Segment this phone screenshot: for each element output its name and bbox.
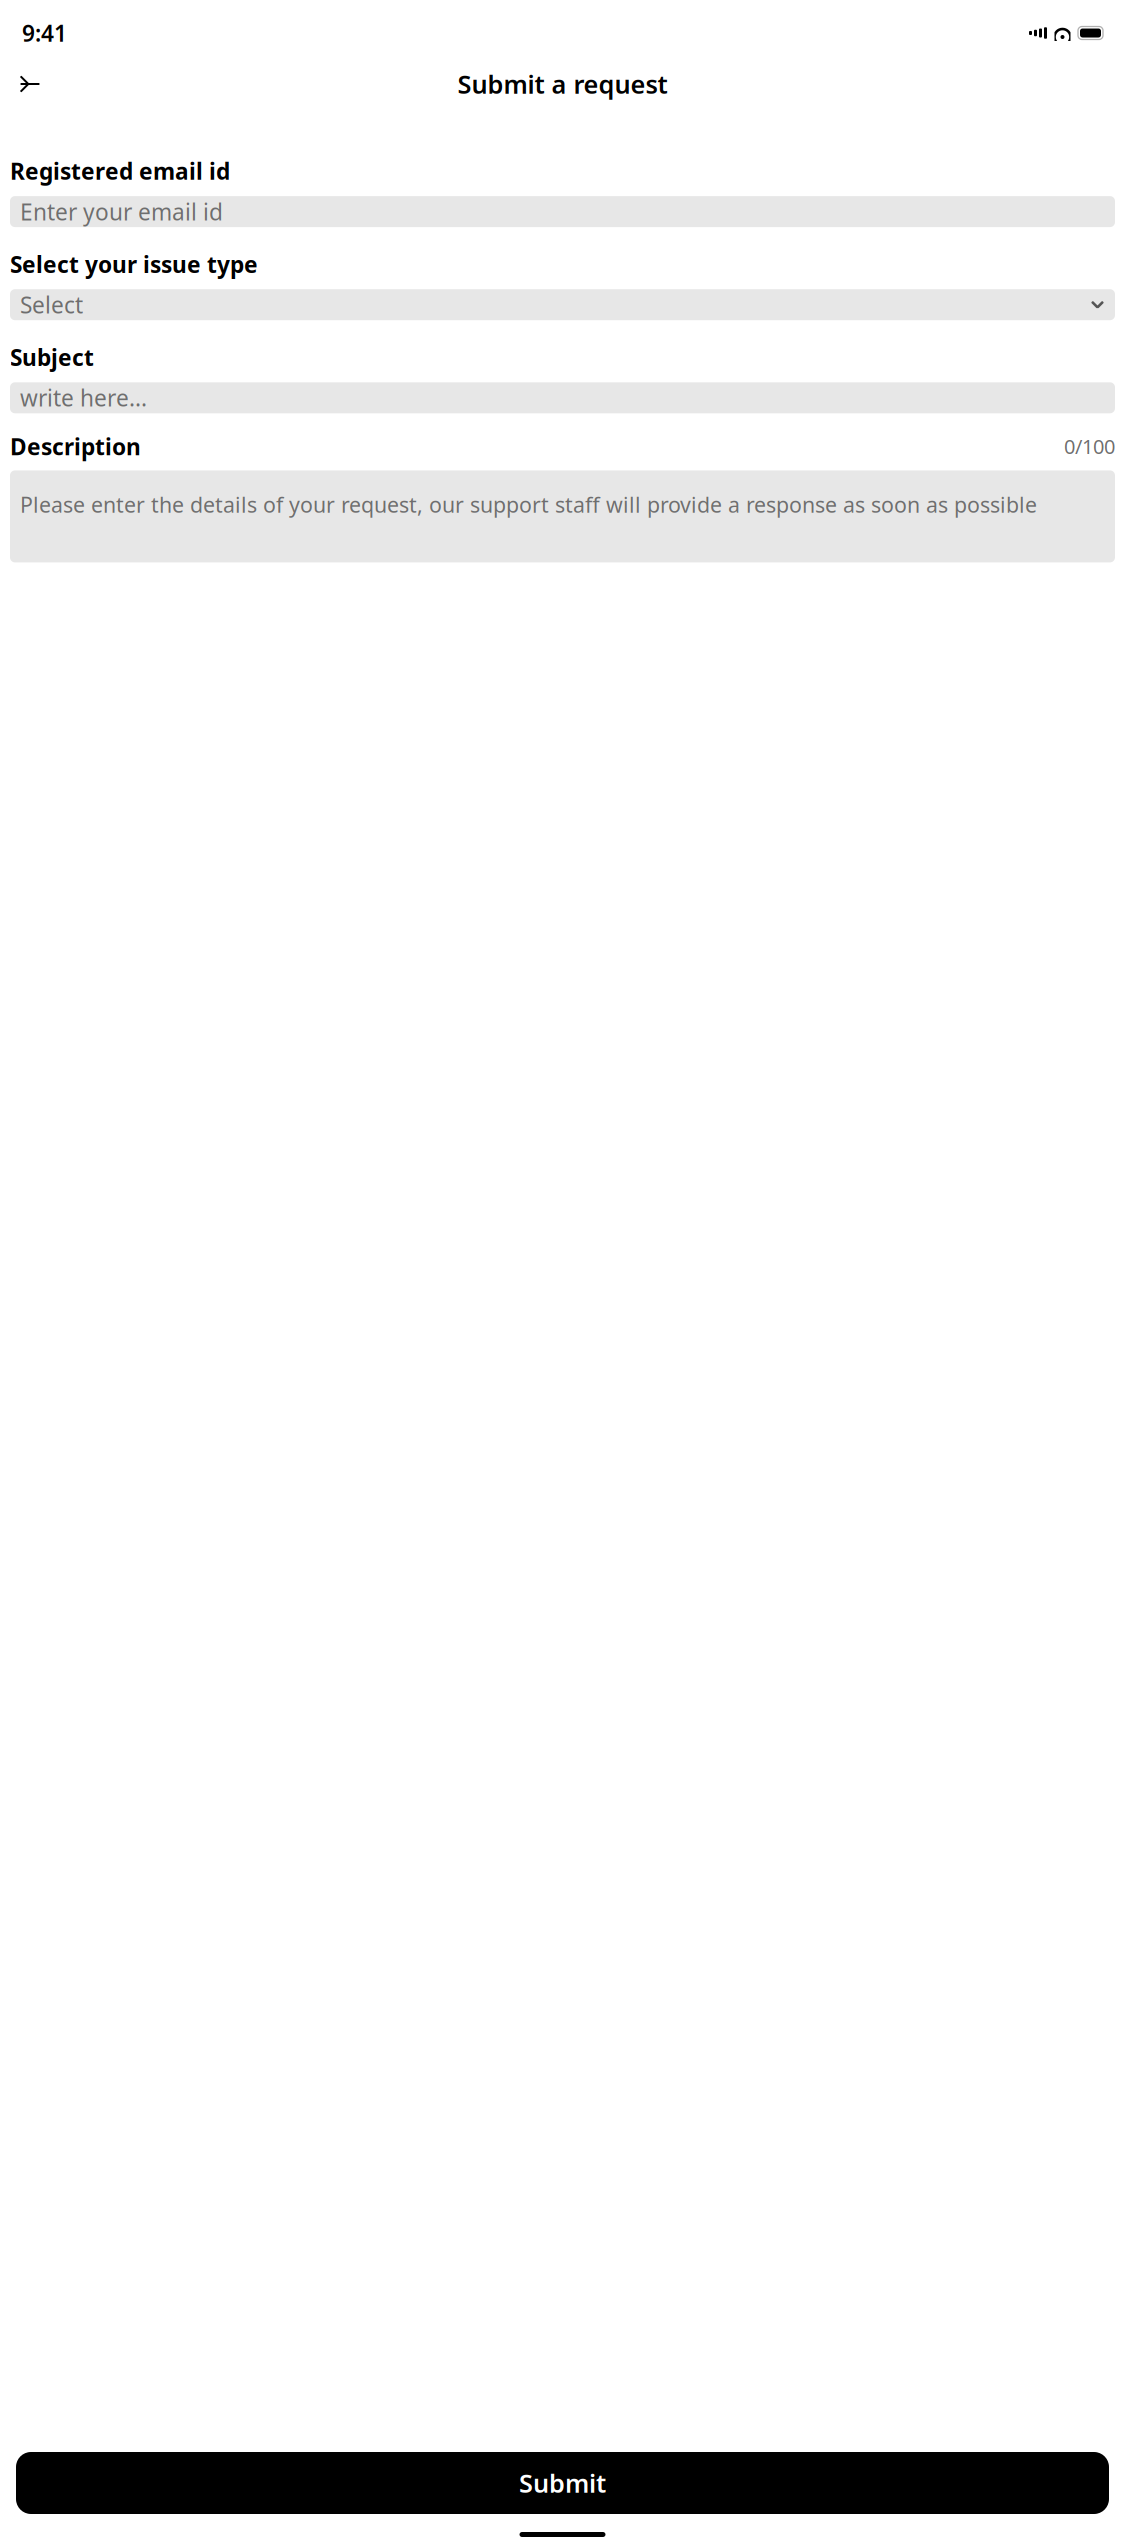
staticText: Select your issue type — [10, 249, 258, 279]
staticText: Subject — [10, 342, 94, 372]
staticText: 9:41 — [22, 18, 67, 48]
button[interactable]: Submit — [16, 2452, 1109, 2514]
button[interactable]: Back — [8, 62, 52, 106]
staticText: Registered email id — [10, 156, 230, 186]
button[interactable]: Enter your email id — [10, 196, 1115, 227]
staticText: write here... — [20, 383, 147, 413]
button[interactable]: Select — [10, 289, 1115, 320]
staticText: Enter your email id — [20, 197, 223, 227]
button[interactable]: write here... — [10, 382, 1115, 413]
staticText: Submit a request — [457, 67, 667, 101]
staticText: 0/100 — [1064, 433, 1115, 460]
button[interactable]: Please enter the details of your request… — [10, 470, 1115, 562]
staticText: Select — [20, 290, 83, 320]
staticText: Please enter the details of your request… — [20, 490, 1037, 519]
staticText: Description — [10, 431, 141, 461]
staticText: Submit — [519, 2466, 606, 2500]
